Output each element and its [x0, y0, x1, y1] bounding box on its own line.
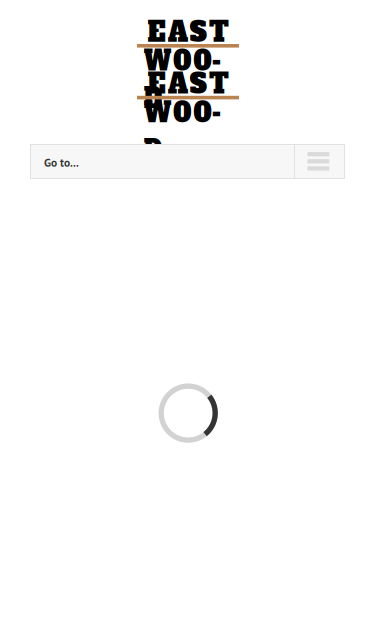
staticText: Go to... — [44, 155, 79, 170]
button[interactable]: Open menu — [295, 144, 344, 178]
button[interactable]: Go to... — [30, 144, 294, 178]
staticText: WOOD — [135, 42, 241, 80]
button[interactable]: EAST — [88, 20, 288, 124]
staticText: EAST — [144, 65, 232, 103]
staticText: WOOD — [135, 94, 241, 131]
staticText: EAST — [144, 13, 232, 51]
